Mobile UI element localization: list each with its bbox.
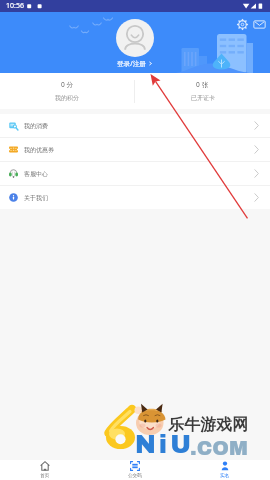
button[interactable]: 公交码 (90, 460, 180, 480)
staticText: 0 张 (196, 80, 209, 89)
button[interactable]: 我的消费 (0, 114, 270, 138)
staticText: NiU (135, 431, 194, 458)
button[interactable]: 实名 (180, 460, 270, 480)
button[interactable]: 我的优惠券 (0, 138, 270, 162)
button[interactable]: Messages (253, 18, 266, 31)
staticText: 客服中心 (24, 170, 48, 178)
button[interactable]: 登录/注册 (117, 59, 153, 68)
staticText: 已开证卡 (191, 94, 215, 102)
staticText: 我的优惠券 (24, 146, 54, 154)
staticText: 10:56 (6, 1, 24, 11)
staticText: 实名 (220, 473, 230, 479)
staticText: 0 分 (61, 80, 74, 89)
staticText: 登录/注册 (117, 59, 146, 68)
staticText: 首页 (40, 473, 50, 479)
button[interactable]: 关于我们 (0, 186, 270, 209)
button[interactable]: 首页 (0, 460, 90, 480)
staticText: 公交码 (128, 473, 142, 479)
button[interactable]: 0 分 (0, 73, 134, 109)
button[interactable]: 0 张 (135, 73, 270, 109)
staticText: 我的积分 (55, 94, 79, 102)
staticText: .COM (190, 437, 248, 459)
staticText: 关于我们 (24, 194, 48, 202)
button[interactable]: 客服中心 (0, 162, 270, 186)
button[interactable]: Settings (236, 18, 249, 31)
staticText: 我的消费 (24, 122, 48, 130)
staticText: 乐牛游戏网 (168, 415, 248, 435)
button[interactable]: Avatar (116, 19, 154, 57)
